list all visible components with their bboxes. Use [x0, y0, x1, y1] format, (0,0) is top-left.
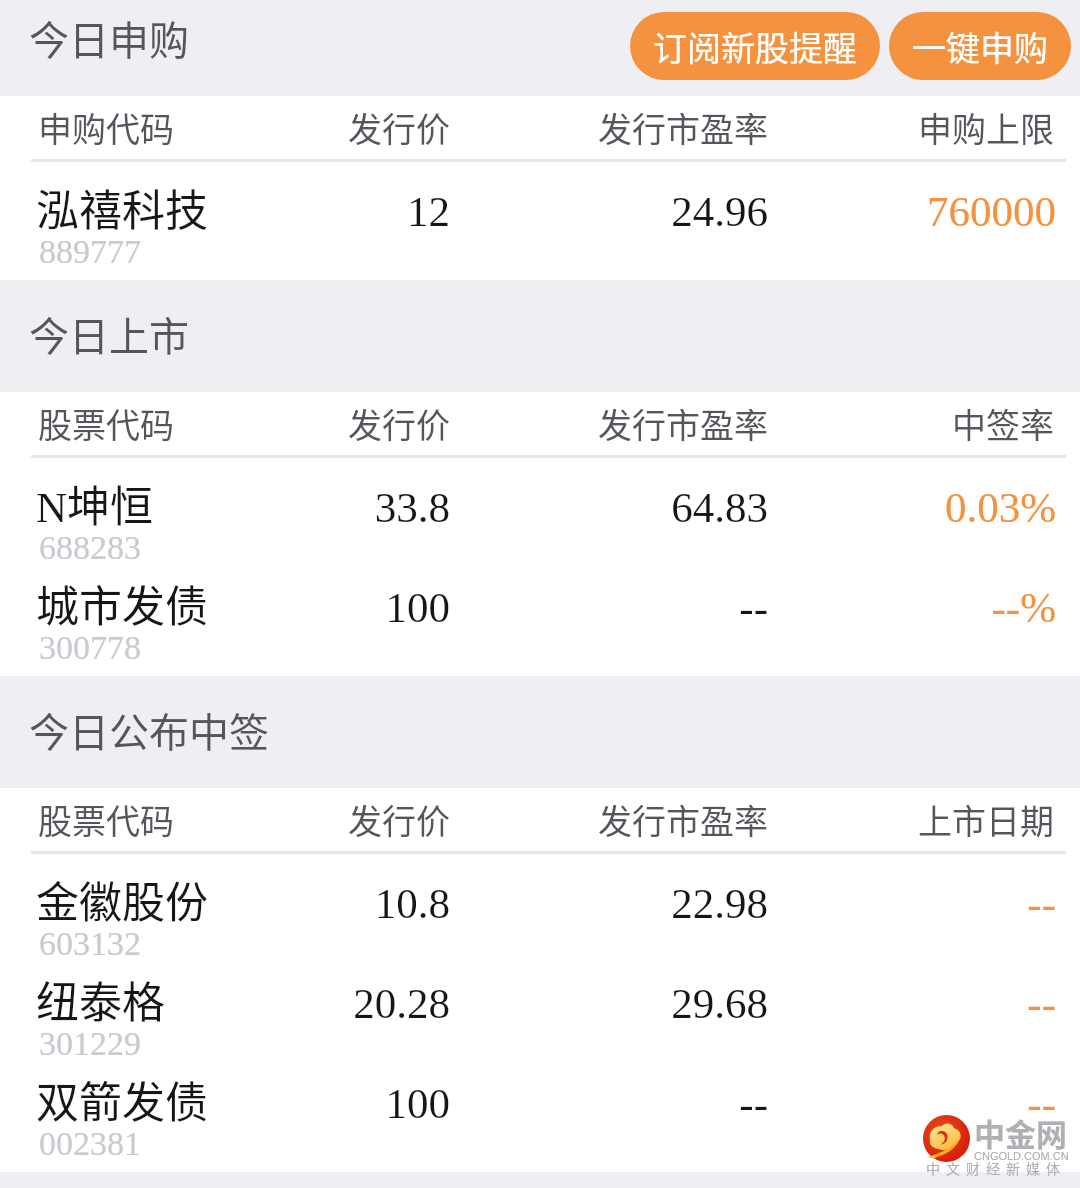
staticText: 0.03% [0, 484, 1056, 532]
button[interactable]: 一键申购 [889, 12, 1071, 80]
staticText: 发行市盈率 [0, 399, 768, 448]
staticText: 64.83 [0, 484, 768, 532]
staticText: 发行价 [0, 103, 450, 152]
staticText: -- [0, 880, 1056, 928]
button[interactable] [0, 455, 1080, 555]
staticText: 发行价 [0, 399, 450, 448]
staticText: 今日申购 [29, 9, 189, 67]
staticText: 29.68 [0, 980, 768, 1028]
staticText: 城市发债 [36, 572, 208, 634]
staticText: 100 [0, 584, 450, 632]
staticText: 金徽股份 [36, 868, 208, 930]
staticText: 泓禧科技 [36, 176, 208, 238]
button[interactable] [0, 159, 1080, 259]
staticText: 10.8 [0, 880, 450, 928]
staticText: 申购代码 [38, 103, 174, 152]
staticText: 603132 [39, 925, 141, 963]
staticText: 今日上市 [29, 305, 189, 363]
staticText: 301229 [39, 1025, 141, 1063]
staticText: 688283 [39, 529, 141, 567]
staticText: 申购上限 [918, 103, 1054, 152]
staticText: 订阅新股提醒 [653, 22, 857, 71]
staticText: 24.96 [0, 188, 768, 236]
staticText: 760000 [0, 188, 1056, 236]
staticText: 纽泰格 [36, 968, 165, 1030]
other: 中金网 logo [923, 1115, 970, 1162]
staticText: 002381 [39, 1125, 141, 1163]
staticText: -- [0, 584, 768, 632]
staticText: -- [0, 1080, 1056, 1128]
button[interactable] [0, 555, 1080, 655]
staticText: 发行市盈率 [0, 795, 768, 844]
staticText: 上市日期 [918, 795, 1054, 844]
staticText: 22.98 [0, 880, 768, 928]
staticText: 889777 [39, 233, 141, 271]
button[interactable] [0, 1051, 1080, 1151]
staticText: N坤恒 [36, 472, 154, 534]
staticText: --% [0, 584, 1056, 632]
button[interactable] [0, 951, 1080, 1051]
staticText: 100 [0, 1080, 450, 1128]
staticText: 发行价 [0, 795, 450, 844]
staticText: 双箭发债 [36, 1068, 208, 1130]
staticText: 33.8 [0, 484, 450, 532]
staticText: 一键申购 [912, 22, 1048, 71]
staticText: -- [0, 1080, 768, 1128]
staticText: 发行市盈率 [0, 103, 768, 152]
button[interactable]: 订阅新股提醒 [630, 12, 880, 80]
staticText: 20.28 [0, 980, 450, 1028]
staticText: 300778 [39, 629, 141, 667]
staticText: 中签率 [952, 399, 1054, 448]
staticText: 中文财经新媒体 [926, 1158, 1066, 1178]
staticText: 股票代码 [38, 795, 174, 844]
button[interactable] [0, 851, 1080, 951]
staticText: 今日公布中签 [29, 701, 269, 759]
staticText: 股票代码 [38, 399, 174, 448]
staticText: -- [0, 980, 1056, 1028]
staticText: CNGOLD.COM.CN [974, 1150, 1069, 1162]
staticText: 12 [0, 188, 450, 236]
staticText: 中金网 [974, 1110, 1067, 1155]
